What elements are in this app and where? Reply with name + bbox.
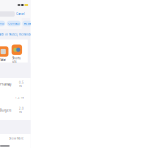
button[interactable]: Top Hits <box>0 21 5 26</box>
button[interactable]: Search in Notes, Reminders <box>0 29 35 40</box>
staticText: Top Hits <box>0 22 4 25</box>
staticText: Search in Notes, Reminders <box>0 33 34 36</box>
button[interactable]: Messages <box>22 21 37 26</box>
staticText: 0.5 mi <box>19 81 24 88</box>
staticText: Messages <box>24 22 36 25</box>
button[interactable]: Cancel <box>16 12 25 16</box>
button[interactable] <box>0 91 30 104</box>
staticText: Pharmacy <box>0 83 11 86</box>
staticText: Burgers <box>0 109 11 112</box>
staticText: Contacts <box>8 22 19 25</box>
staticText: 2.0 mi <box>19 107 24 114</box>
staticText: Safari <box>0 58 6 62</box>
staticText: Cancel <box>16 12 25 16</box>
button[interactable]: Shortcuts <box>12 45 22 63</box>
button[interactable]: Burgers <box>0 104 30 117</box>
button[interactable]: Pharmacy <box>0 78 30 91</box>
button[interactable]: Contacts <box>7 21 21 26</box>
button[interactable]: Safari <box>0 46 8 62</box>
button[interactable]: Show More <box>0 134 30 143</box>
staticText: Show More <box>9 137 24 140</box>
staticText: Shortcuts <box>12 56 21 63</box>
staticText: 1.2 mi <box>15 96 24 99</box>
